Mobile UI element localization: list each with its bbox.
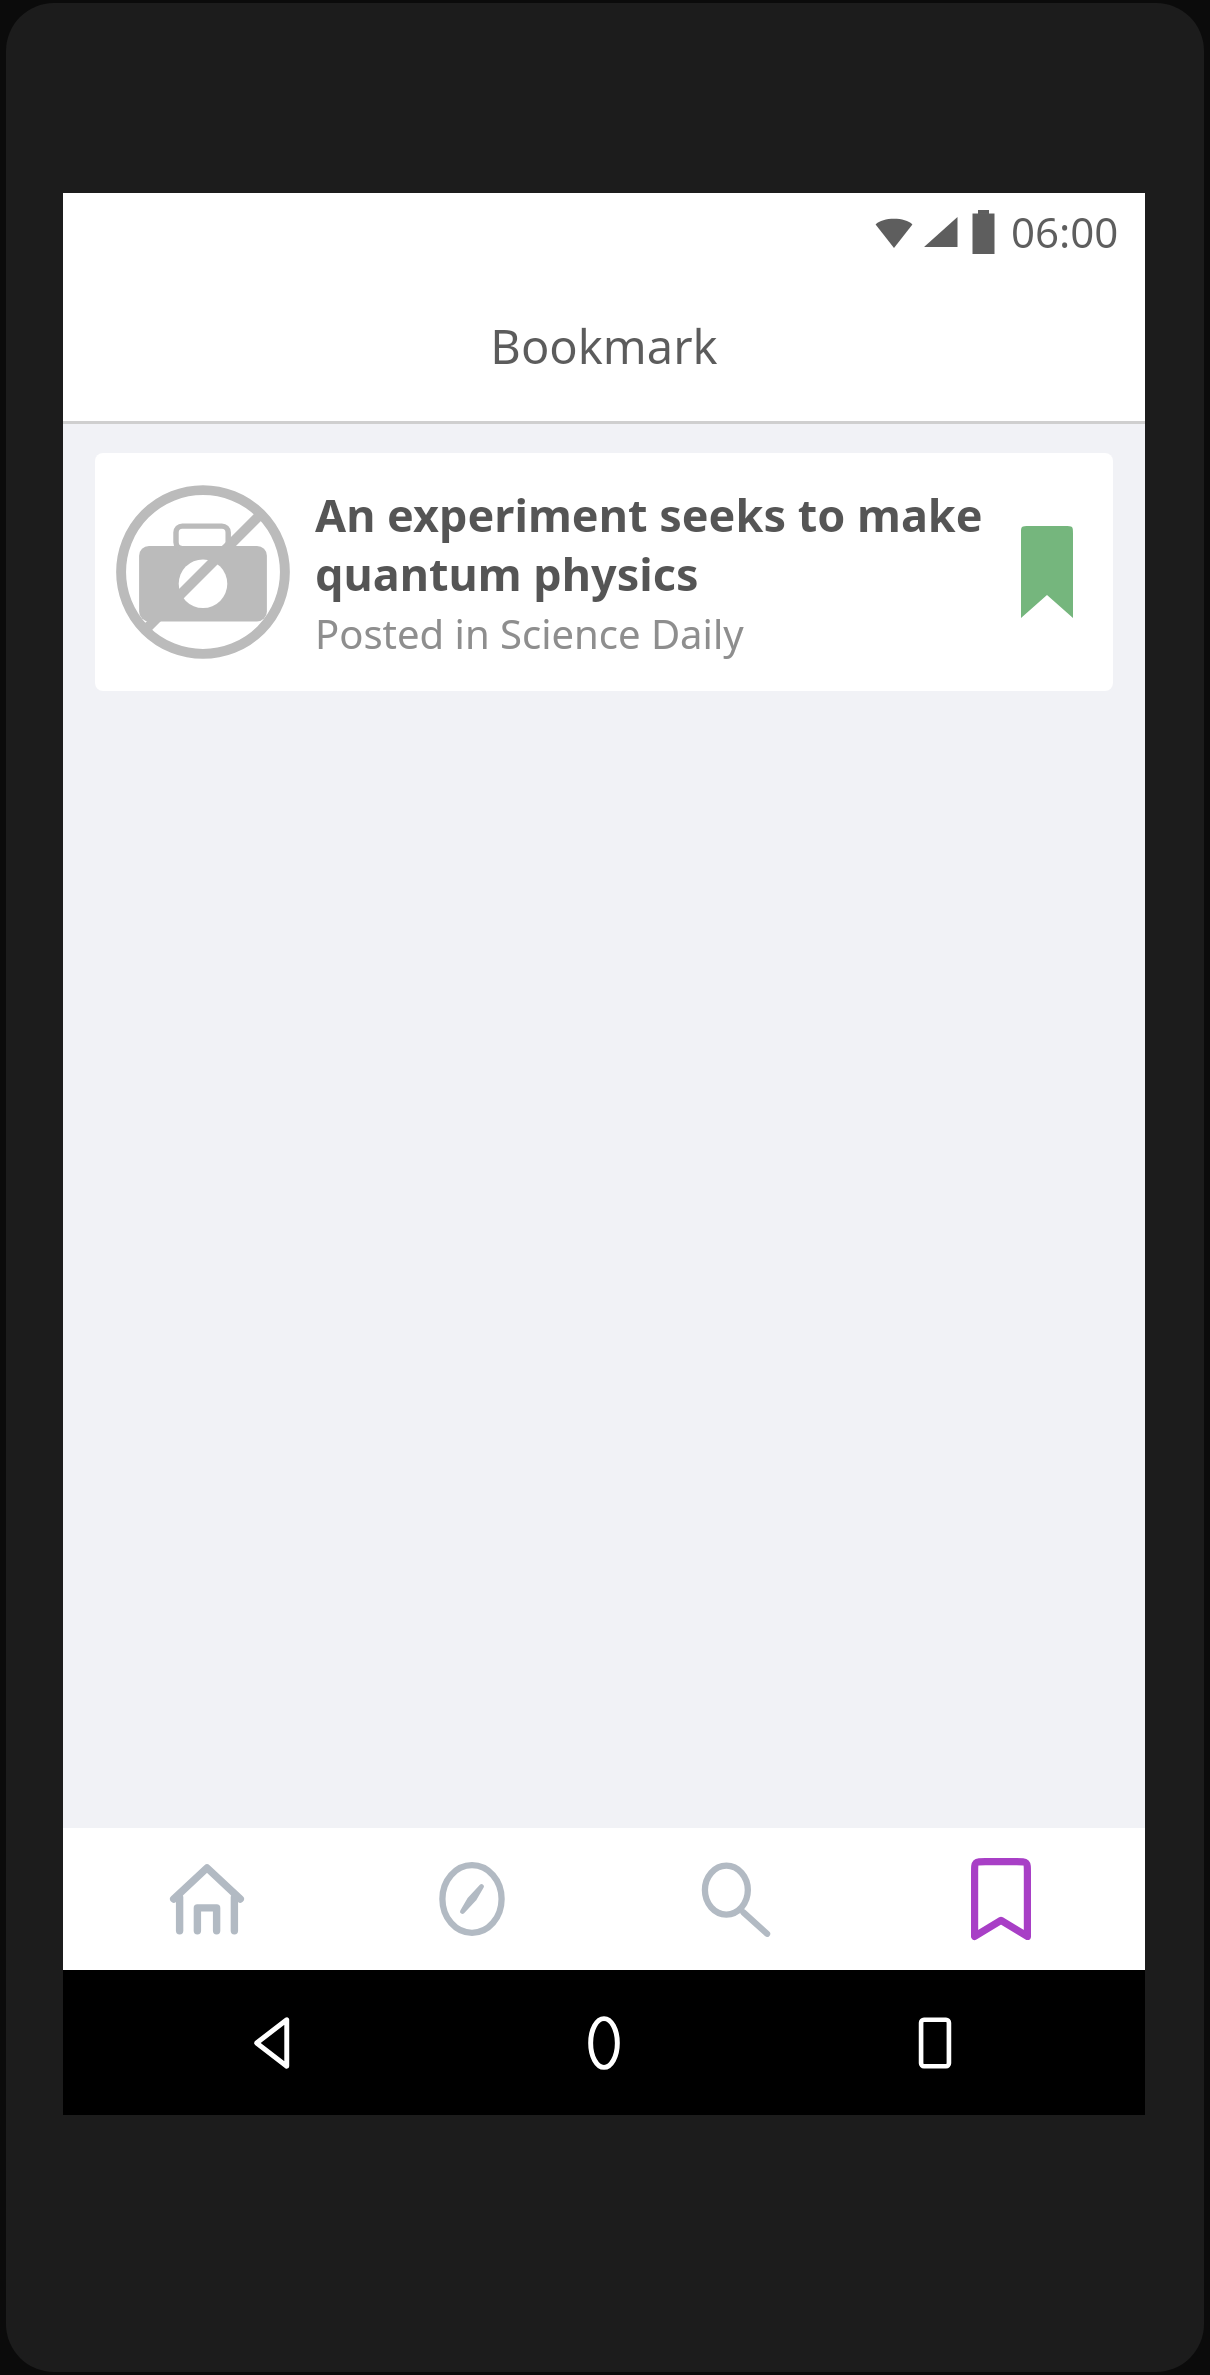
button[interactable]: Explore (352, 1828, 592, 1970)
staticText: Bookmark (490, 314, 718, 378)
button[interactable]: Search (616, 1828, 856, 1970)
button[interactable]: Recent apps (815, 1970, 1055, 2115)
button[interactable]: Home (484, 1970, 724, 2115)
button[interactable]: Back (154, 1970, 394, 2115)
button[interactable]: Remove bookmark (999, 524, 1095, 620)
button[interactable]: An experiment seeks to make quantum phys… (95, 453, 1113, 691)
staticText: An experiment seeks to make quantum phys… (315, 484, 985, 604)
staticText: Posted in Science Daily (315, 606, 744, 660)
button[interactable]: Bookmarks (881, 1828, 1121, 1970)
staticText: 06:00 (1011, 203, 1119, 260)
button[interactable]: Home (87, 1828, 327, 1970)
